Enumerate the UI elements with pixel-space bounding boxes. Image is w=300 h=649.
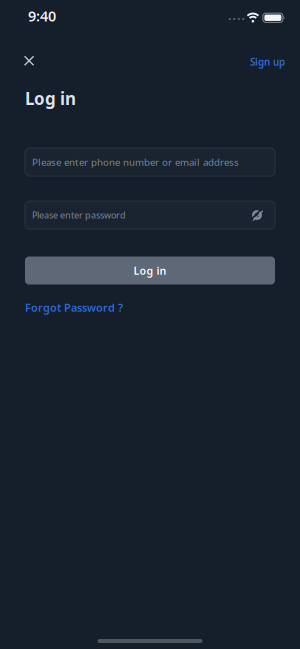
button[interactable]: [0, 54, 34, 66]
staticText: Please enter password: [32, 209, 126, 221]
button[interactable]: Forgot Password ?: [0, 300, 123, 315]
staticText: Log in: [133, 263, 166, 278]
button[interactable]: Log in: [25, 257, 275, 285]
staticText: Please enter phone number or email addre…: [32, 155, 239, 169]
staticText: Forgot Password ?: [25, 300, 123, 315]
button[interactable]: [251, 209, 263, 221]
staticText: Log in: [25, 87, 76, 110]
staticText: Sign up: [250, 55, 285, 69]
button[interactable]: Sign up: [250, 51, 300, 69]
staticText: 9:40: [28, 6, 56, 26]
